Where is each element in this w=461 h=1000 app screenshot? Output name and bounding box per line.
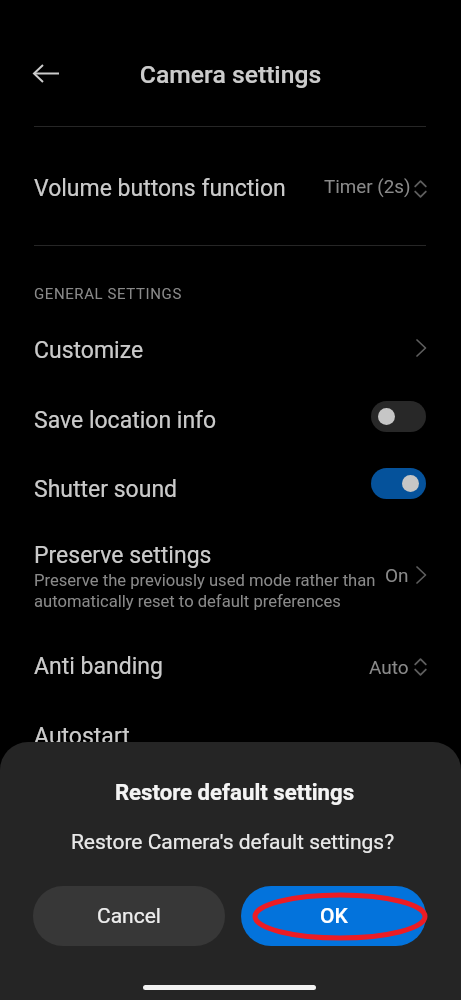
staticText: Shutter sound [34, 476, 178, 503]
staticText: Save location info [34, 407, 217, 434]
button[interactable]: Customize [0, 320, 461, 378]
staticText: OK [320, 904, 348, 929]
staticText: Customize [34, 337, 144, 364]
staticText: Anti banding [34, 653, 163, 680]
button[interactable]: Save location info [0, 390, 461, 448]
button[interactable]: Volume buttons function [0, 151, 461, 226]
staticText: Autostart [34, 723, 130, 750]
button[interactable]: Autostart [0, 706, 461, 764]
staticText: GENERAL SETTINGS [34, 285, 182, 303]
button[interactable]: Shutter sound [0, 459, 461, 517]
staticText: Preserve settings [34, 542, 212, 569]
button[interactable]: Preserve settings [0, 528, 461, 618]
staticText: Timer (2s) [324, 176, 411, 198]
staticText: Volume buttons function [34, 175, 286, 202]
button[interactable]: Switch on [371, 468, 426, 499]
staticText: Restore Camera's default settings? [2, 830, 461, 855]
button[interactable]: OK [241, 886, 426, 946]
staticText: Auto [369, 656, 409, 678]
button[interactable]: Switch off [371, 401, 426, 432]
staticText: Cancel [97, 904, 161, 929]
button[interactable]: Cancel [33, 886, 225, 946]
staticText: On [385, 564, 409, 586]
staticText: Restore default settings [4, 779, 461, 805]
button[interactable]: Back [25, 50, 71, 96]
staticText: Preserve the previously used mode rather… [34, 571, 376, 611]
button[interactable]: Anti banding [0, 636, 461, 694]
staticText: Camera settings [0, 60, 461, 89]
